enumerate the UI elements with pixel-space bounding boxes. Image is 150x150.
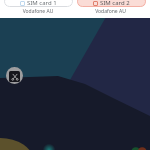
button[interactable]: SIM card 1 — [4, 0, 73, 7]
button[interactable]: App shortcut — [6, 67, 23, 84]
staticText: Vodafone AU — [76, 8, 145, 15]
button[interactable]: SIM card 2 — [77, 0, 146, 7]
staticText: SIM card 2 — [100, 0, 130, 7]
staticText: Vodafone AU — [4, 8, 72, 15]
staticText: SIM card 1 — [27, 0, 57, 7]
